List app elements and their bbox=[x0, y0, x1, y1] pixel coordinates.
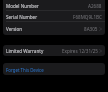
button[interactable]: Limited Warranty bbox=[3, 45, 105, 56]
button[interactable]: Version bbox=[3, 22, 105, 35]
staticText: F68MQ9L1BC bbox=[73, 14, 102, 20]
staticText: Limited Warranty bbox=[6, 48, 44, 54]
staticText: 8A305 bbox=[84, 26, 98, 32]
staticText: Model Number bbox=[6, 3, 39, 9]
button[interactable]: Serial Number bbox=[3, 11, 105, 22]
staticText: Serial Number bbox=[6, 14, 38, 20]
staticText: Forget This Device bbox=[6, 67, 44, 73]
button[interactable]: Forget This Device bbox=[3, 63, 105, 75]
button[interactable]: Model Number bbox=[3, 0, 105, 11]
staticText: A2688 bbox=[88, 3, 102, 9]
staticText: Expires 12/31/25 bbox=[62, 48, 98, 54]
staticText: Version bbox=[6, 26, 23, 32]
